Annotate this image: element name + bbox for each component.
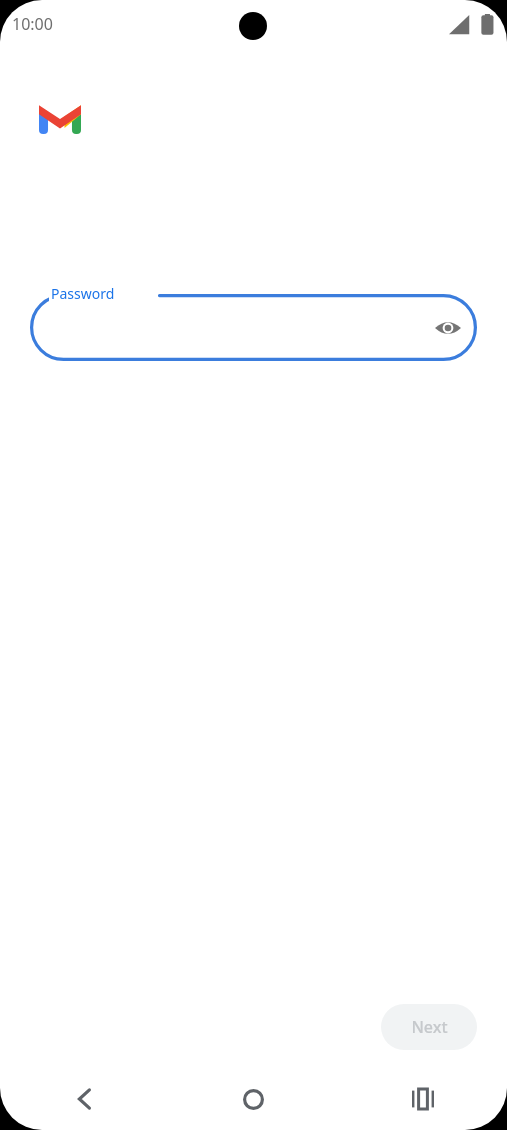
staticText: Next	[411, 1016, 448, 1038]
button[interactable]: Show password	[426, 306, 470, 350]
button[interactable]: Next	[381, 1004, 477, 1050]
button[interactable]: Show password	[30, 294, 477, 361]
staticText: 10:00	[12, 13, 53, 35]
button[interactable]: Home	[169, 1068, 338, 1130]
staticText: Password	[51, 284, 115, 303]
button[interactable]: Back	[0, 1068, 169, 1130]
button[interactable]: Recent apps	[338, 1068, 507, 1130]
